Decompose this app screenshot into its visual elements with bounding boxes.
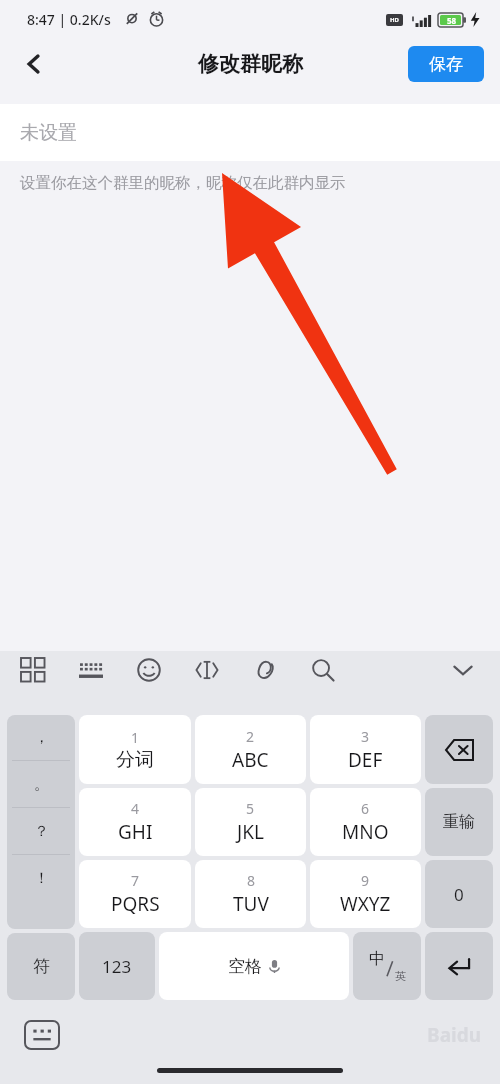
button[interactable]: 5 xyxy=(195,788,306,856)
button[interactable]: 7 xyxy=(79,860,191,928)
button[interactable]: 空格 xyxy=(159,932,349,1000)
button[interactable]: Cursor xyxy=(188,651,226,689)
button[interactable]: 9 xyxy=(310,860,421,928)
staticText: TUV xyxy=(233,891,269,917)
staticText: 修改群昵称 xyxy=(198,51,303,77)
staticText: ？ xyxy=(34,822,49,841)
staticText: 7 xyxy=(131,871,140,890)
button[interactable]: 0 xyxy=(425,860,493,928)
staticText: 中 xyxy=(369,949,385,969)
staticText: 英 xyxy=(395,969,406,983)
staticText: 123 xyxy=(102,955,132,978)
staticText: 空格 xyxy=(228,956,262,977)
staticText: 9 xyxy=(361,871,370,890)
button[interactable]: ， xyxy=(7,715,75,929)
button[interactable]: 保存 xyxy=(408,46,484,82)
button[interactable]: 未设置 xyxy=(0,104,500,161)
button[interactable]: 4 xyxy=(79,788,191,856)
staticText: MNO xyxy=(342,819,389,845)
staticText: PQRS xyxy=(111,891,160,917)
button[interactable]: 3 xyxy=(310,715,421,784)
staticText: Baidu xyxy=(427,1022,482,1048)
staticText: ABC xyxy=(232,747,269,773)
staticText: 未设置 xyxy=(20,121,77,145)
button[interactable]: 2 xyxy=(195,715,306,784)
staticText: 8:47 | 0.2K/s xyxy=(27,10,111,29)
staticText: 符 xyxy=(33,956,50,977)
button[interactable]: Switch keyboard xyxy=(24,1020,60,1050)
button[interactable]: 8 xyxy=(195,860,306,928)
button[interactable]: Back xyxy=(8,38,60,90)
button[interactable]: Keyboard xyxy=(72,651,110,689)
button[interactable]: 重输 xyxy=(425,788,493,856)
button[interactable]: Search xyxy=(304,651,342,689)
staticText: 2 xyxy=(246,727,255,746)
staticText: GHI xyxy=(118,819,153,845)
staticText: 重输 xyxy=(443,812,475,832)
button[interactable]: 1 xyxy=(79,715,191,784)
staticText: 分词 xyxy=(116,748,154,772)
staticText: HD xyxy=(390,16,399,24)
button[interactable]: 符 xyxy=(7,933,75,1000)
button[interactable]: 123 xyxy=(79,932,155,1000)
staticText: 设置你在这个群里的昵称，昵称仅在此群内显示 xyxy=(20,173,484,193)
staticText: DEF xyxy=(348,747,383,773)
button[interactable]: Hide keyboard xyxy=(444,651,482,689)
staticText: 保存 xyxy=(429,54,463,75)
button[interactable]: Enter xyxy=(425,932,493,1000)
staticText: 。 xyxy=(34,775,49,794)
staticText: ， xyxy=(34,728,49,747)
staticText: 8 xyxy=(247,871,256,890)
button[interactable]: Backspace xyxy=(425,715,493,784)
staticText: 6 xyxy=(361,799,370,818)
staticText: WXYZ xyxy=(340,891,391,917)
staticText: 58 xyxy=(447,15,457,26)
staticText: 3 xyxy=(361,727,370,746)
button[interactable]: Emoji xyxy=(130,651,168,689)
button[interactable]: Apps xyxy=(14,651,52,689)
button[interactable]: 6 xyxy=(310,788,421,856)
staticText: JKL xyxy=(237,819,264,845)
button[interactable]: 中 xyxy=(353,932,421,1000)
staticText: 1 xyxy=(131,728,140,747)
staticText: ！ xyxy=(34,869,49,888)
staticText: 0 xyxy=(454,883,464,906)
button[interactable]: Clip xyxy=(246,651,284,689)
staticText: 5 xyxy=(246,799,255,818)
staticText: 4 xyxy=(131,799,140,818)
